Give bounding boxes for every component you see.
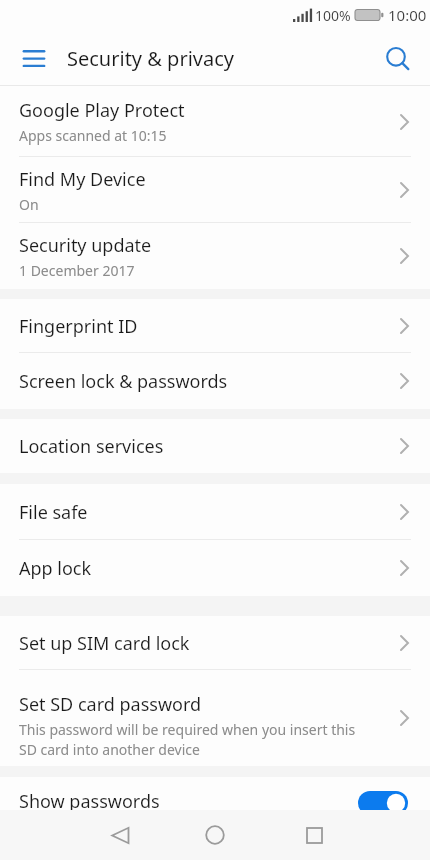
button[interactable]: Set up SIM card lock: [0, 616, 430, 670]
staticText: Screen lock & passwords: [19, 369, 228, 394]
staticText: App lock: [19, 556, 92, 581]
staticText: Location services: [19, 434, 164, 459]
staticText: Set SD card password: [19, 692, 202, 717]
button[interactable]: Set SD card password: [0, 670, 430, 766]
staticText: Fingerprint ID: [19, 314, 138, 339]
button[interactable]: Fingerprint ID: [0, 299, 430, 353]
staticText: File safe: [19, 500, 88, 525]
staticText: This password will be required when you …: [19, 720, 372, 759]
button[interactable]: [292, 810, 336, 860]
staticText: On: [19, 195, 39, 214]
button[interactable]: [385, 46, 410, 71]
staticText: 10:00: [388, 5, 427, 25]
button[interactable]: [22, 46, 46, 70]
button[interactable]: [193, 810, 237, 860]
button[interactable]: Location services: [0, 419, 430, 473]
button[interactable]: Show passwords: [0, 777, 430, 810]
staticText: Apps scanned at 10:15: [19, 126, 167, 145]
staticText: Show passwords: [19, 789, 160, 810]
staticText: Find My Device: [19, 167, 146, 192]
button[interactable]: Security update: [0, 223, 430, 289]
button[interactable]: Google Play Protect: [0, 86, 430, 157]
button[interactable]: Find My Device: [0, 157, 430, 223]
button[interactable]: App lock: [0, 540, 430, 596]
staticText: Google Play Protect: [19, 98, 185, 123]
staticText: Security update: [19, 233, 152, 258]
button[interactable]: [98, 810, 142, 860]
staticText: Security & privacy: [67, 45, 234, 72]
staticText: 1 December 2017: [19, 261, 135, 280]
staticText: Set up SIM card lock: [19, 631, 190, 656]
button[interactable]: Screen lock & passwords: [0, 353, 430, 409]
button[interactable]: File safe: [0, 484, 430, 540]
staticText: 100%: [315, 6, 351, 25]
